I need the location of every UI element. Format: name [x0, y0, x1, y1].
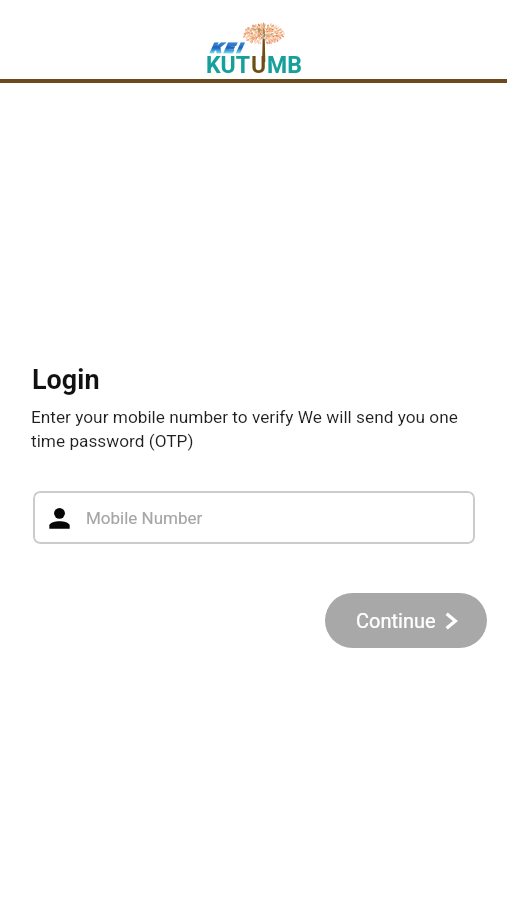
button[interactable]: Continue: [325, 593, 487, 648]
staticText: KUT: [206, 52, 251, 79]
staticText: Continue: [356, 609, 436, 632]
other: KEI Kutumb logo: [205, 14, 305, 78]
staticText: U: [251, 52, 267, 79]
button[interactable]: Person: [33, 491, 475, 544]
staticText: Enter your mobile number to verify We wi…: [31, 407, 475, 451]
staticText: MB: [267, 52, 302, 79]
staticText: Login: [32, 364, 100, 396]
staticText: KEI: [209, 41, 243, 56]
staticText: Mobile Number: [86, 508, 203, 528]
other: Person: [49, 508, 70, 529]
